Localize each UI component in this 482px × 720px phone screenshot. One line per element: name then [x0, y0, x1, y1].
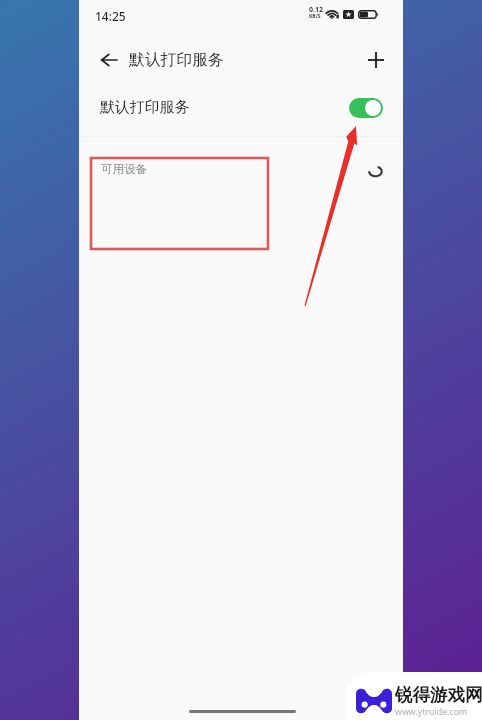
staticText: KB/S — [309, 13, 321, 20]
button[interactable]: Toggle default print service — [349, 98, 383, 118]
staticText: 14:25 — [95, 8, 126, 24]
staticText: 可用设备 — [101, 162, 148, 177]
button[interactable]: 默认打印服务 — [79, 89, 403, 136]
button[interactable]: Add — [363, 47, 389, 73]
staticText: 默认打印服务 — [100, 98, 190, 117]
button[interactable]: 可用设备 — [95, 158, 265, 180]
staticText: 锐得游戏网 — [395, 684, 482, 706]
button[interactable]: Back — [95, 46, 123, 74]
staticText: www.ytruide.com — [395, 706, 468, 718]
staticText: 0.12 — [309, 5, 323, 15]
staticText: 默认打印服务 — [129, 50, 224, 70]
